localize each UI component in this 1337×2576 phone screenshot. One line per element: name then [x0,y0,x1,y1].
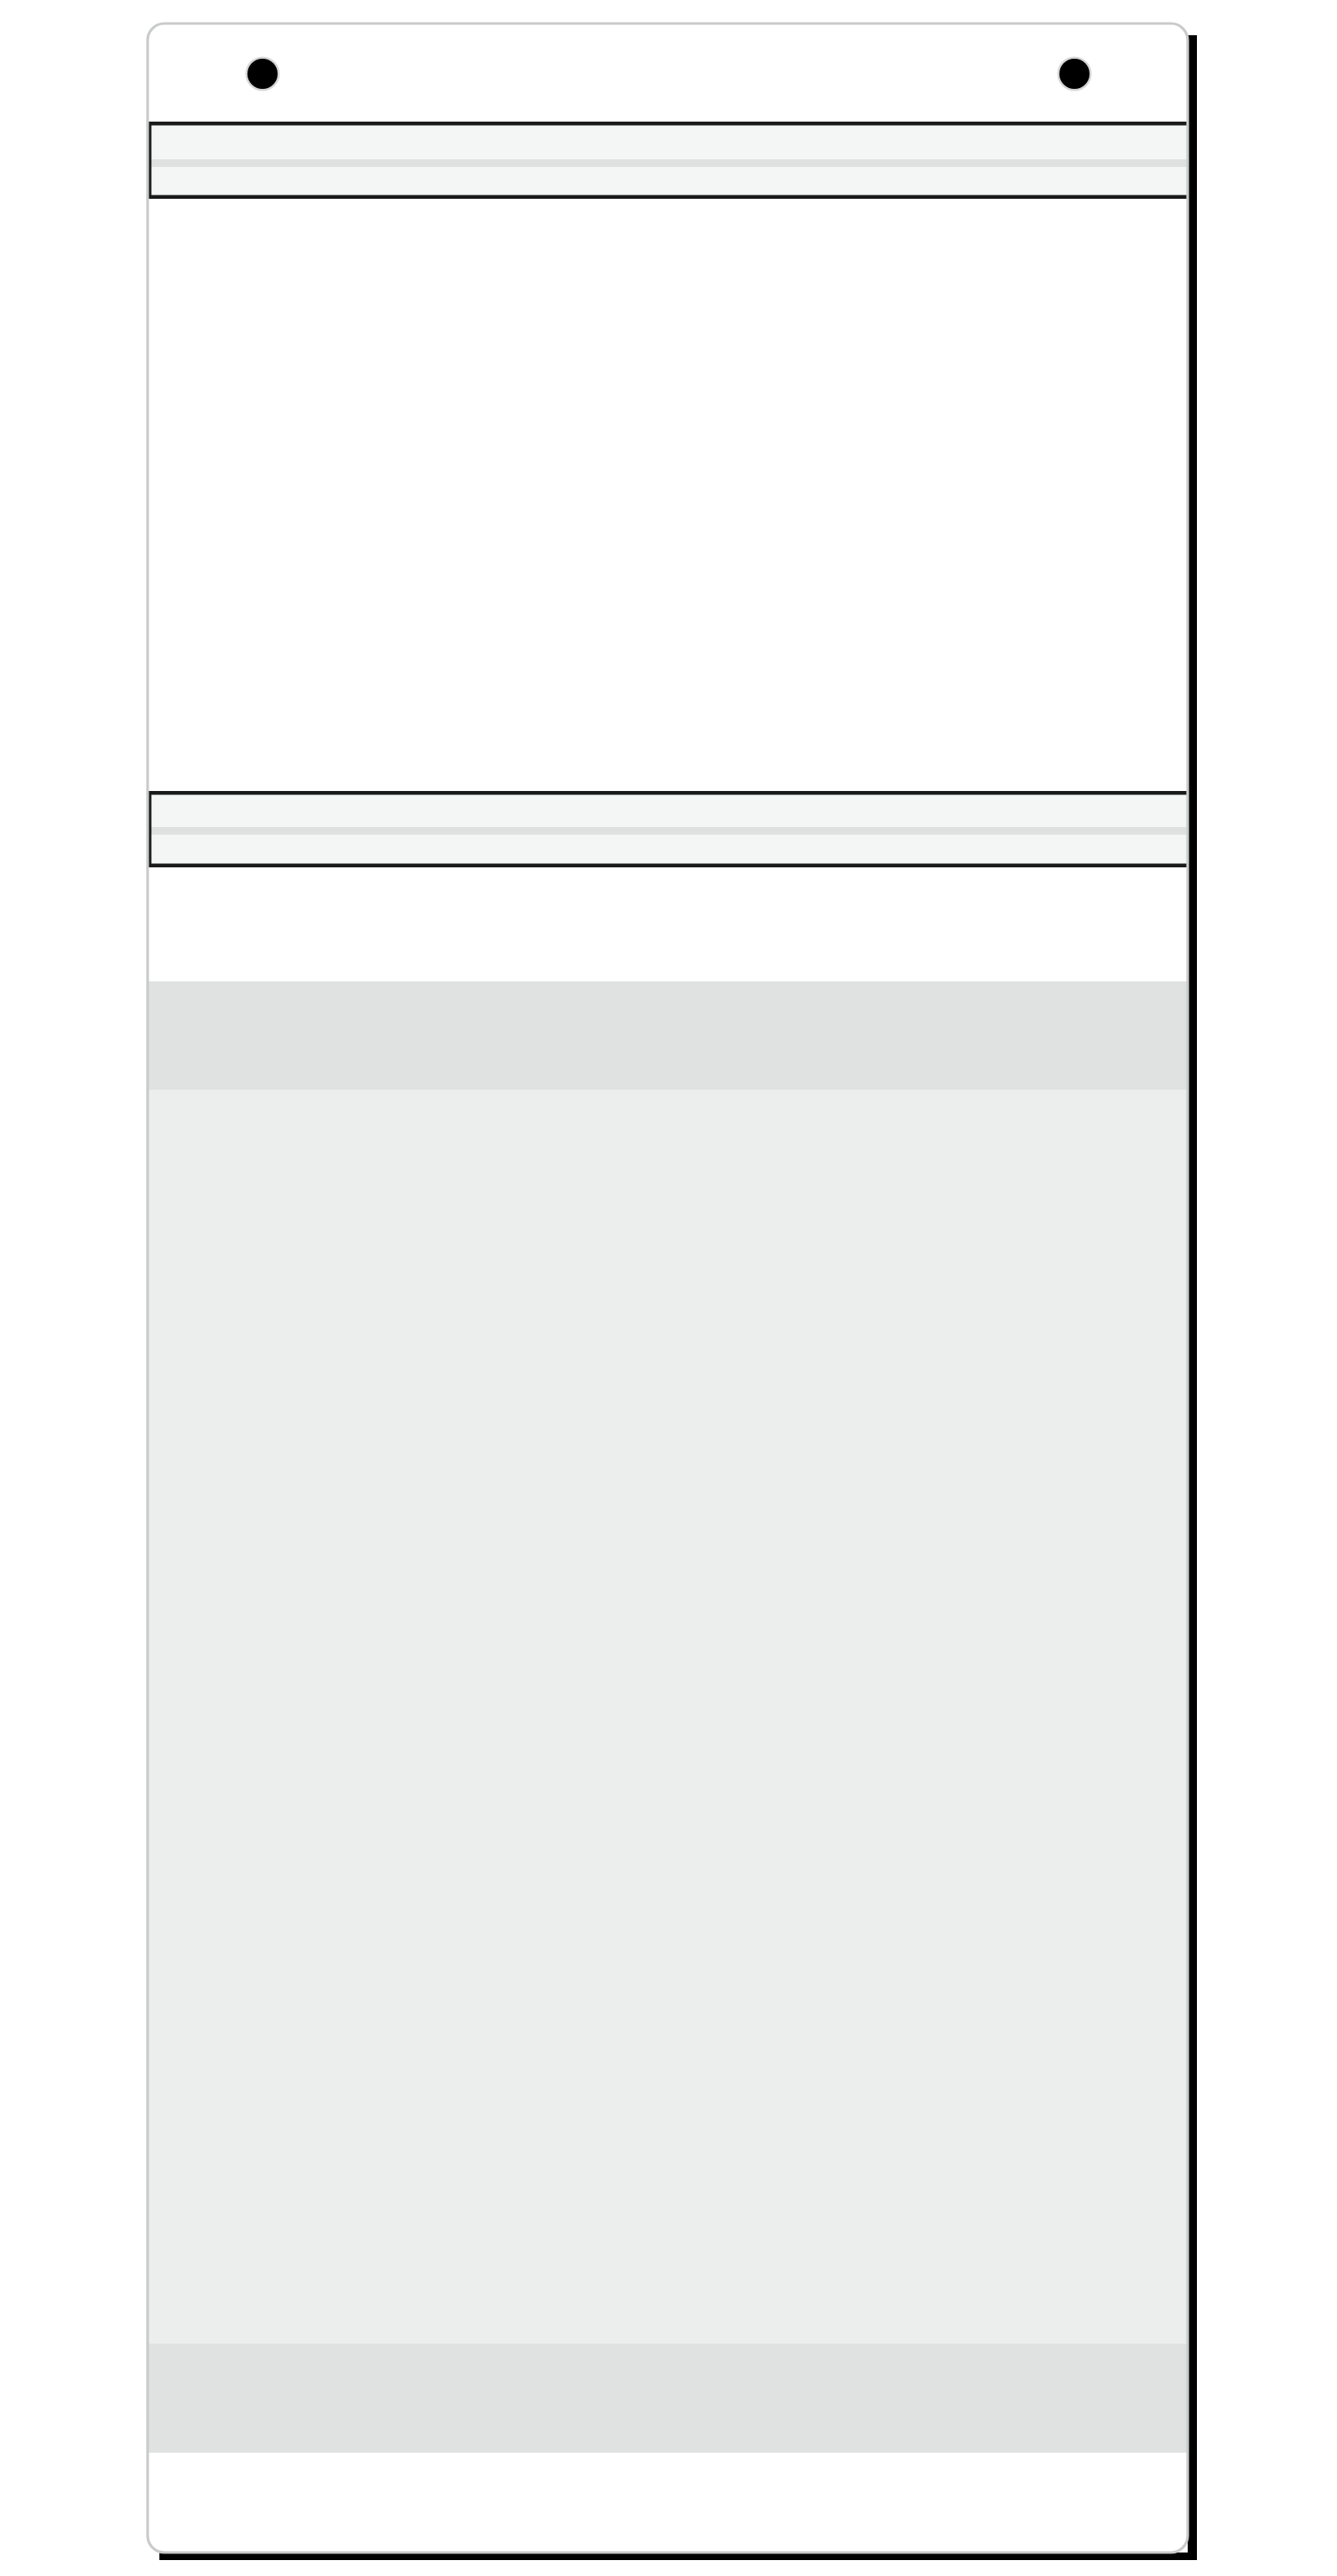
button[interactable]: Top bar [148,122,1188,199]
button[interactable]: Section bar [148,791,1188,867]
button[interactable]: Menu [241,52,284,96]
button[interactable]: More options [1053,52,1096,96]
